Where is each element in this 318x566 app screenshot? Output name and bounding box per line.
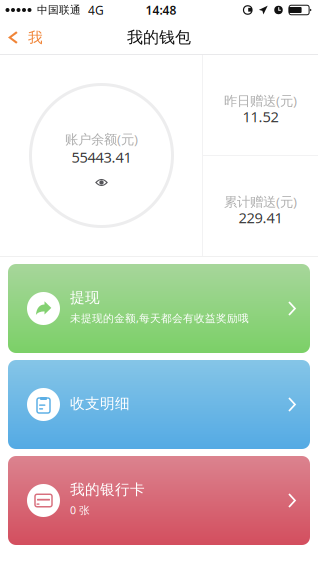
- staticText: 累计赠送(元): [224, 193, 297, 210]
- staticText: 提现: [70, 288, 100, 306]
- button[interactable]: 我: [0, 20, 55, 55]
- staticText: 14:48: [145, 2, 176, 18]
- staticText: 229.41: [238, 208, 282, 227]
- staticText: 我的银行卡: [70, 480, 145, 498]
- staticText: 我的钱包: [127, 28, 191, 47]
- button[interactable]: 收支明细: [8, 360, 310, 449]
- staticText: 4G: [88, 2, 104, 18]
- staticText: 账户余额(元): [65, 130, 138, 148]
- staticText: 中国联通: [37, 3, 81, 16]
- staticText: 0 张: [70, 503, 90, 517]
- button[interactable]: 我的银行卡: [8, 456, 310, 545]
- staticText: 我: [28, 28, 43, 46]
- staticText: 昨日赠送(元): [224, 92, 297, 109]
- staticText: 未提现的金额,每天都会有收益奖励哦: [70, 311, 249, 325]
- button[interactable]: 提现: [8, 264, 310, 353]
- staticText: 55443.41: [71, 147, 131, 167]
- staticText: 11.52: [242, 107, 278, 126]
- staticText: 收支明细: [70, 394, 130, 412]
